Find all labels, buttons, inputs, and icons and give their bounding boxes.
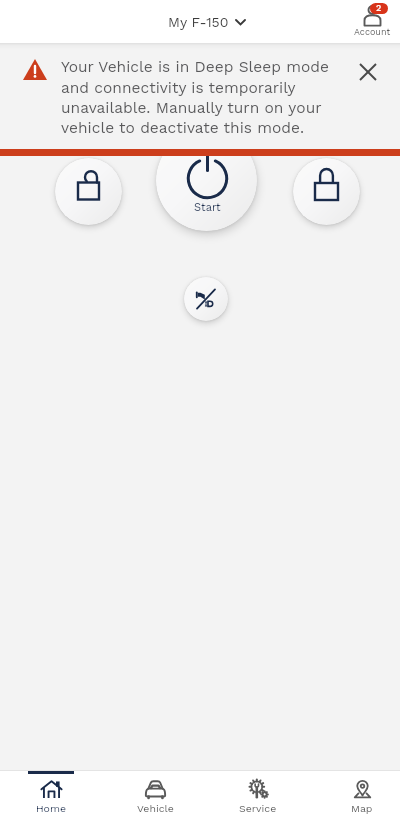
staticText: Home [36,802,66,814]
button[interactable]: Vehicle [103,770,207,815]
staticText: Your Vehicle is in Deep Sleep mode and c… [61,58,333,137]
button[interactable]: My F-150 [160,10,254,34]
button[interactable]: Lock [293,158,360,225]
staticText: Start [194,201,221,214]
button[interactable]: Close [355,59,381,85]
staticText: My F-150 [168,14,229,30]
staticText: Service [239,802,277,814]
staticText: Map [351,802,373,814]
staticText: Account [354,27,391,38]
button[interactable]: Service [206,770,310,815]
button[interactable]: Start [156,156,257,231]
staticText: 2 [376,3,382,14]
button[interactable]: Map [310,770,400,815]
staticText: Vehicle [137,802,174,814]
button[interactable]: Account [352,0,392,43]
button[interactable]: Home [0,770,103,815]
button[interactable]: Horn and lights [184,277,228,321]
button[interactable]: Unlock [55,158,122,225]
